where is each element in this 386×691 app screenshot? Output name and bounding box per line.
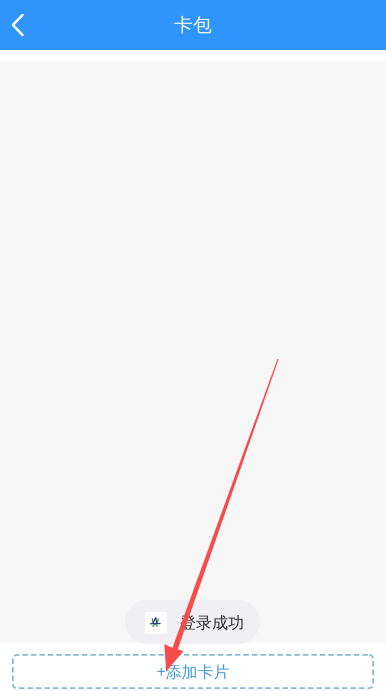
button[interactable]: +添加卡片 <box>0 643 386 691</box>
staticText: +添加卡片 <box>156 661 229 682</box>
button[interactable]: Back <box>0 3 36 47</box>
staticText: 卡包 <box>174 13 212 36</box>
staticText: 登录成功 <box>180 613 244 633</box>
